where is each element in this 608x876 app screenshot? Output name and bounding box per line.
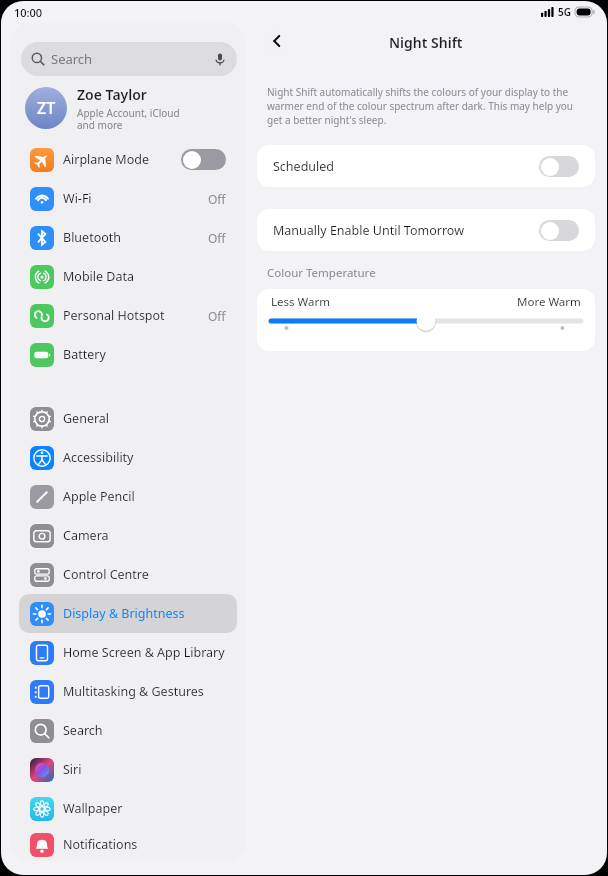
staticText: Wallpaper xyxy=(63,800,123,817)
staticText: Siri xyxy=(63,761,82,778)
button[interactable]: ZT xyxy=(11,76,245,140)
staticText: Search xyxy=(51,50,93,68)
button[interactable]: Accessibility xyxy=(19,438,237,477)
staticText: 10:00 xyxy=(14,5,43,20)
button[interactable]: Home Screen & App Library xyxy=(19,633,237,672)
staticText: 5G xyxy=(558,5,571,19)
staticText: Display & Brightness xyxy=(63,605,185,622)
staticText: Airplane Mode xyxy=(63,151,149,168)
staticText: Apple Pencil xyxy=(63,488,135,505)
staticText: Off xyxy=(208,308,226,324)
staticText: Mobile Data xyxy=(63,268,135,285)
staticText: Personal Hotspot xyxy=(63,307,165,324)
button[interactable]: Toggle xyxy=(539,156,579,177)
button[interactable]: General xyxy=(19,399,237,438)
staticText: Home Screen & App Library xyxy=(63,644,225,661)
button[interactable]: Display & Brightness xyxy=(19,594,237,633)
staticText: Colour Temperature xyxy=(267,265,376,281)
button[interactable]: Toggle xyxy=(181,149,226,170)
staticText: Battery xyxy=(63,346,106,363)
button[interactable]: Apple Pencil xyxy=(19,477,237,516)
staticText: Wi-Fi xyxy=(63,190,92,207)
staticText: Notifications xyxy=(63,836,138,853)
button[interactable]: Search xyxy=(19,711,237,750)
staticText: Night Shift automatically shifts the col… xyxy=(267,85,585,127)
staticText: More Warm xyxy=(517,294,581,310)
button[interactable]: Airplane Mode xyxy=(19,140,237,179)
button[interactable]: Toggle xyxy=(539,220,579,241)
staticText: Off xyxy=(208,230,226,246)
button[interactable]: Siri xyxy=(19,750,237,789)
button[interactable]: Personal Hotspot xyxy=(19,296,237,335)
button[interactable]: Scheduled xyxy=(257,145,595,187)
staticText: Apple Account, iCloud and more xyxy=(77,106,180,132)
staticText: Camera xyxy=(63,527,109,544)
staticText: Zoe Taylor xyxy=(77,85,147,104)
button[interactable]: Mobile Data xyxy=(19,257,237,296)
button[interactable]: Bluetooth xyxy=(19,218,237,257)
button[interactable]: Notifications xyxy=(19,828,237,861)
button[interactable]: Wallpaper xyxy=(19,789,237,828)
button[interactable]: Camera xyxy=(19,516,237,555)
staticText: ZT xyxy=(37,97,56,119)
button[interactable]: Colour temperature slider xyxy=(271,317,581,339)
staticText: Multitasking & Gestures xyxy=(63,683,204,700)
button[interactable]: Manually Enable Until Tomorrow xyxy=(257,209,595,251)
staticText: Accessibility xyxy=(63,449,134,466)
staticText: Scheduled xyxy=(273,158,335,175)
staticText: Off xyxy=(208,191,226,207)
button[interactable]: Wi-Fi xyxy=(19,179,237,218)
staticText: Less Warm xyxy=(271,294,330,310)
staticText: General xyxy=(63,410,110,427)
staticText: Night Shift xyxy=(389,33,463,52)
button[interactable]: Control Centre xyxy=(19,555,237,594)
staticText: Bluetooth xyxy=(63,229,122,246)
button[interactable]: Back xyxy=(261,25,293,57)
staticText: Search xyxy=(63,722,103,739)
button[interactable]: Multitasking & Gestures xyxy=(19,672,237,711)
staticText: Manually Enable Until Tomorrow xyxy=(273,222,464,239)
button[interactable]: Battery xyxy=(19,335,237,374)
button[interactable]: Search xyxy=(21,42,237,76)
staticText: Control Centre xyxy=(63,566,149,583)
